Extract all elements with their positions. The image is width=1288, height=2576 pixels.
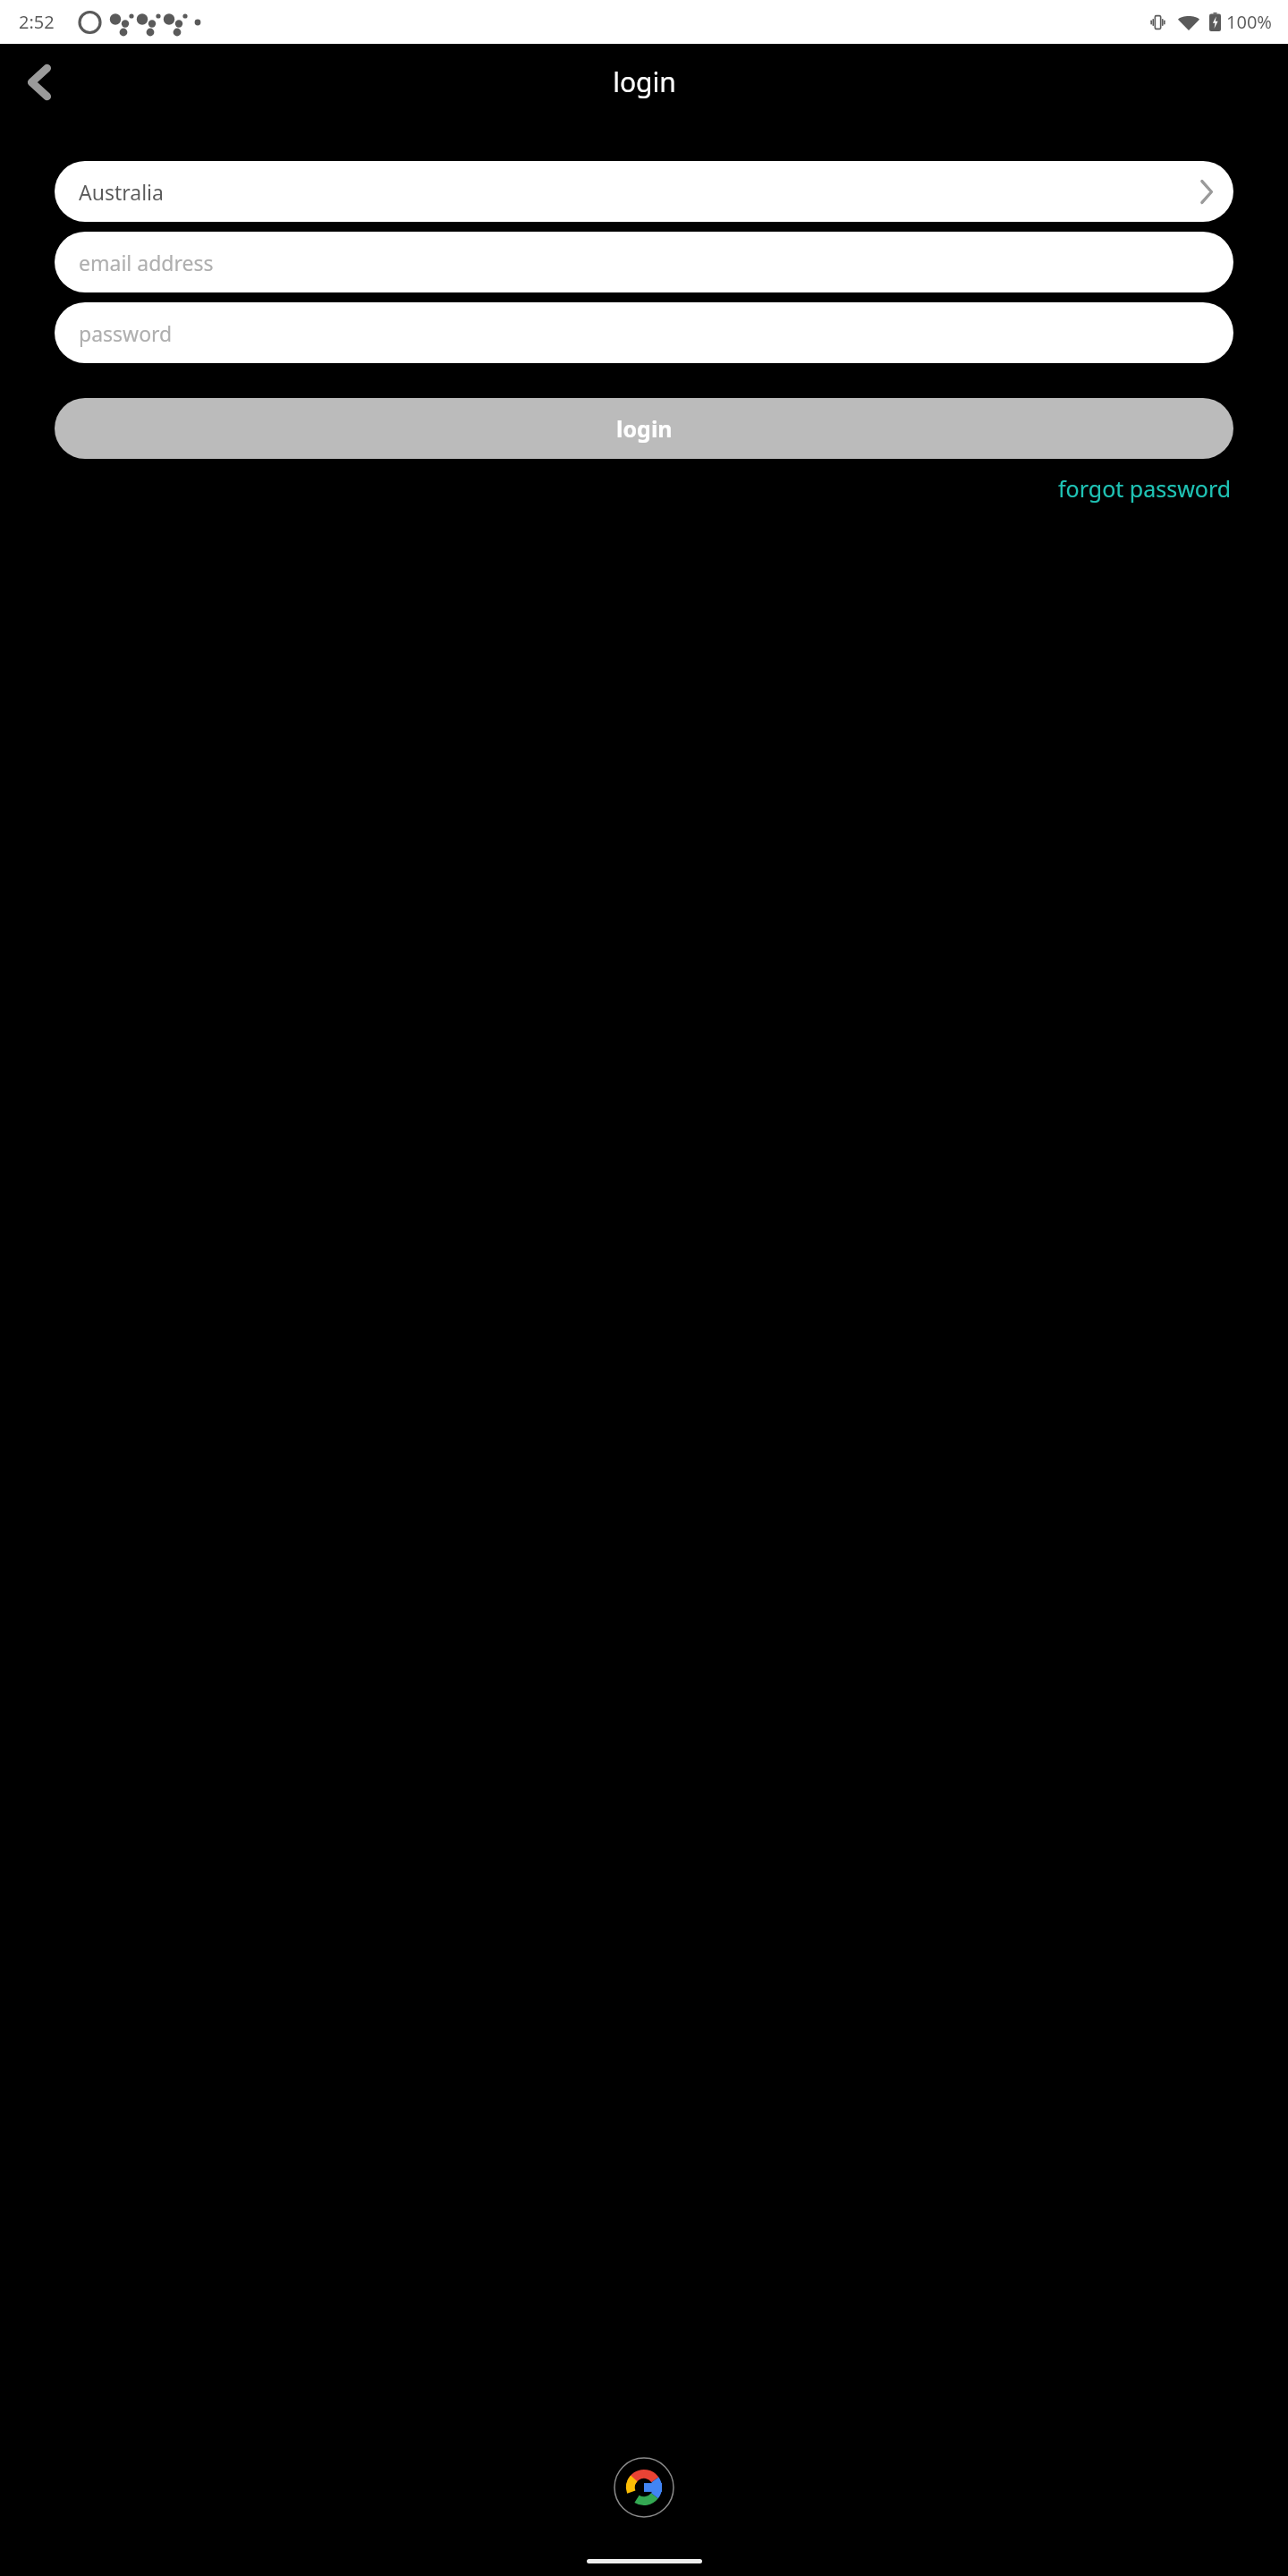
staticText: Australia — [79, 178, 164, 206]
button[interactable]: Australia — [55, 161, 1233, 222]
staticText: 100% — [1226, 10, 1272, 34]
staticText: password — [79, 319, 173, 347]
staticText: 2:52 — [19, 10, 55, 34]
button[interactable]: password — [55, 302, 1233, 363]
button[interactable]: Google sign in — [614, 2457, 674, 2518]
button[interactable]: email address — [55, 232, 1233, 292]
button[interactable]: Back — [16, 59, 63, 106]
staticText: email address — [79, 249, 214, 276]
button[interactable]: forgot password — [1056, 470, 1233, 507]
button[interactable]: login — [55, 398, 1233, 459]
staticText: login — [613, 64, 676, 100]
staticText: login — [616, 413, 673, 444]
staticText: forgot password — [1058, 473, 1232, 504]
